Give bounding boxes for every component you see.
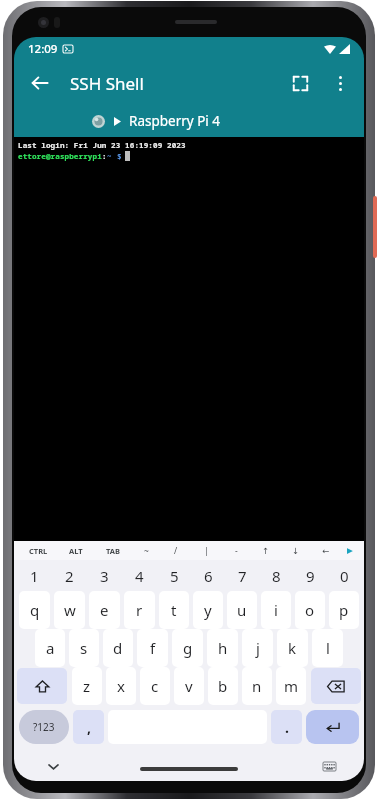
button[interactable]: 6 xyxy=(191,560,225,591)
button[interactable]: Last login: Fri Jun 23 16:19:09 2023 xyxy=(14,137,364,541)
staticText: m xyxy=(284,676,299,696)
button[interactable]: u xyxy=(227,591,257,629)
staticText: v xyxy=(185,676,193,696)
button[interactable]: 1 xyxy=(17,560,52,591)
staticText: t xyxy=(171,600,177,620)
button[interactable]: v xyxy=(174,667,204,705)
staticText: , xyxy=(87,718,91,737)
button[interactable]: 8 xyxy=(259,560,293,591)
staticText: 2 xyxy=(65,566,74,586)
button[interactable]: r xyxy=(124,591,155,629)
staticText: n xyxy=(252,676,262,696)
staticText: SSH Shell xyxy=(70,72,144,95)
staticText: x xyxy=(117,676,125,696)
button[interactable]: 4 xyxy=(122,560,157,591)
staticText: ↓ xyxy=(292,546,300,556)
button[interactable]: TAB xyxy=(94,541,131,560)
button[interactable]: k xyxy=(277,629,308,667)
staticText: a xyxy=(46,638,55,658)
staticText: j xyxy=(256,638,260,658)
button[interactable]: w xyxy=(54,591,85,629)
button[interactable]: Switch keyboard xyxy=(316,753,342,779)
staticText: ALT xyxy=(69,546,83,556)
button[interactable]: e xyxy=(89,591,120,629)
staticText: 7 xyxy=(238,566,247,586)
staticText: c xyxy=(151,676,159,696)
staticText: k xyxy=(288,638,297,658)
button[interactable]: s xyxy=(69,629,99,667)
staticText: 3 xyxy=(100,566,109,586)
button[interactable]: ← xyxy=(311,541,341,560)
staticText: TAB xyxy=(106,546,120,556)
staticText: i xyxy=(274,600,278,620)
staticText: 9 xyxy=(306,566,315,586)
staticText: b xyxy=(218,676,228,696)
button[interactable]: ↑ xyxy=(251,541,281,560)
button[interactable]: h xyxy=(207,629,238,667)
button[interactable]: 2 xyxy=(52,560,87,591)
button[interactable]: z xyxy=(72,667,102,705)
button[interactable]: | xyxy=(191,541,221,560)
button[interactable]: i xyxy=(261,591,291,629)
staticText: 1 xyxy=(30,566,39,586)
button[interactable]: p xyxy=(329,591,359,629)
button[interactable]: 3 xyxy=(87,560,122,591)
staticText: y xyxy=(204,600,212,620)
staticText: p xyxy=(339,600,349,620)
staticText: . xyxy=(285,718,289,737)
button[interactable]: 5 xyxy=(157,560,191,591)
button[interactable]: o xyxy=(295,591,325,629)
staticText: - xyxy=(235,545,238,557)
button[interactable]: More keys xyxy=(341,541,359,560)
staticText: : xyxy=(102,151,107,161)
button[interactable]: f xyxy=(137,629,168,667)
button[interactable]: d xyxy=(103,629,133,667)
button[interactable]: , xyxy=(73,710,104,744)
button[interactable]: b xyxy=(208,667,238,705)
button[interactable]: - xyxy=(221,541,251,560)
button[interactable]: / xyxy=(161,541,191,560)
button[interactable]: 9 xyxy=(293,560,327,591)
button[interactable]: g xyxy=(172,629,203,667)
button[interactable]: . xyxy=(271,710,302,744)
button[interactable]: Hide keyboard xyxy=(40,753,66,779)
staticText: Last login: Fri Jun 23 16:19:09 2023 xyxy=(18,140,186,150)
button[interactable]: 7 xyxy=(225,560,259,591)
button[interactable]: y xyxy=(193,591,223,629)
button[interactable]: ?123 xyxy=(19,710,69,744)
button[interactable]: 0 xyxy=(327,560,361,591)
button[interactable]: x xyxy=(106,667,136,705)
staticText: ▶ xyxy=(347,546,353,555)
button[interactable]: t xyxy=(159,591,189,629)
button[interactable]: Enter xyxy=(306,710,359,744)
button[interactable]: n xyxy=(242,667,272,705)
staticText: ettore@raspberrypi xyxy=(18,151,102,161)
staticText: 0 xyxy=(340,566,349,586)
button[interactable]: ↓ xyxy=(281,541,311,560)
staticText: 8 xyxy=(272,566,281,586)
staticText: | xyxy=(204,545,209,557)
staticText: ~ xyxy=(144,545,149,557)
button[interactable]: l xyxy=(312,629,343,667)
button[interactable]: a xyxy=(35,629,65,667)
button[interactable]: ~ xyxy=(131,541,161,560)
button[interactable]: j xyxy=(242,629,273,667)
button[interactable]: Raspberry Pi 4 xyxy=(14,105,364,137)
button[interactable]: CTRL xyxy=(19,541,57,560)
staticText: CTRL xyxy=(29,546,48,556)
button[interactable]: Fullscreen xyxy=(280,63,320,103)
button[interactable]: Back xyxy=(20,63,60,103)
staticText: ↑ xyxy=(262,546,270,556)
button[interactable]: Backspace xyxy=(311,668,361,704)
button[interactable]: q xyxy=(19,591,50,629)
staticText: g xyxy=(183,638,193,658)
button[interactable]: More options xyxy=(320,63,360,103)
button[interactable]: m xyxy=(276,667,306,705)
button[interactable]: Shift xyxy=(17,668,67,704)
button[interactable]: c xyxy=(140,667,170,705)
staticText: h xyxy=(218,638,228,658)
staticText: 12:09 xyxy=(28,41,58,57)
button[interactable]: ALT xyxy=(57,541,94,560)
